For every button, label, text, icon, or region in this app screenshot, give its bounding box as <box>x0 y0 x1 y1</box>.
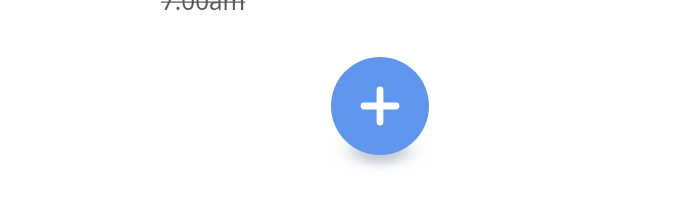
button[interactable]: Add alarm <box>331 57 429 155</box>
staticText: 7:00am <box>161 0 246 17</box>
